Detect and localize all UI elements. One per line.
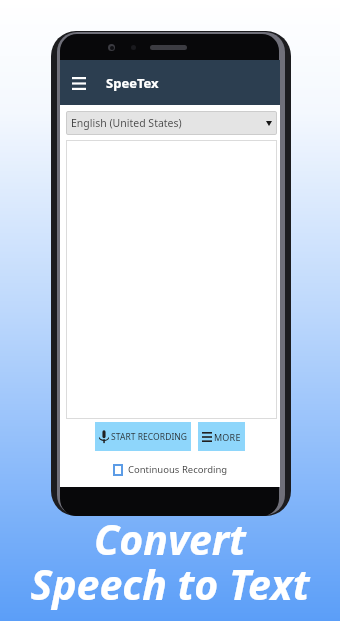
staticText: MORE	[214, 431, 241, 443]
staticText: Convert	[94, 511, 246, 567]
staticText: SpeeTex	[106, 74, 159, 92]
button[interactable]: START RECORDING	[95, 422, 191, 451]
button[interactable]: Continuous Recording	[113, 463, 228, 476]
button[interactable]: Open navigation menu	[67, 71, 91, 95]
staticText: Speech to Text	[30, 556, 310, 612]
button[interactable]: English (United States)	[66, 111, 277, 135]
button[interactable]: MORE	[198, 422, 245, 451]
staticText: START RECORDING	[111, 431, 188, 443]
staticText: Continuous Recording	[128, 463, 228, 476]
staticText: English (United States)	[71, 116, 182, 130]
